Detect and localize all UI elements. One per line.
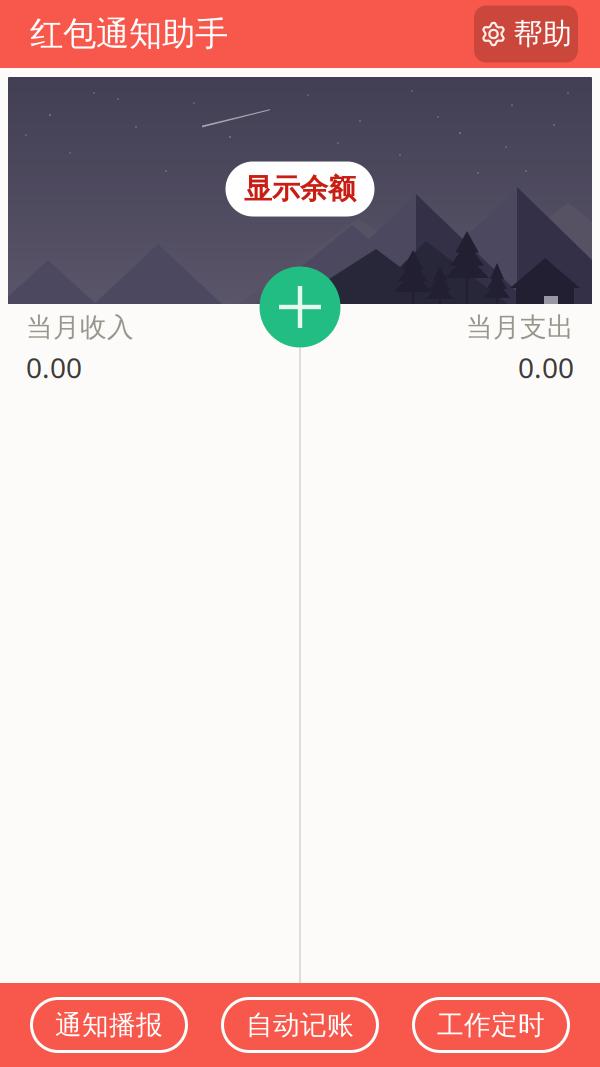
staticText: 自动记账 (246, 1009, 354, 1041)
staticText: 显示余额 (244, 172, 356, 206)
staticText: 通知播报 (55, 1009, 163, 1041)
staticText: 帮助 (513, 16, 571, 52)
staticText: 工作定时 (437, 1009, 545, 1041)
staticText: 当月支出 (466, 311, 574, 344)
button[interactable]: 工作定时 (412, 997, 570, 1053)
button[interactable]: 帮助 (474, 5, 578, 62)
staticText: 0.00 (26, 349, 82, 386)
button[interactable]: 自动记账 (221, 997, 379, 1053)
button[interactable]: 通知播报 (30, 997, 188, 1053)
staticText: 0.00 (518, 349, 574, 386)
button[interactable]: Add record (259, 266, 340, 347)
button[interactable]: 显示余额 (225, 161, 374, 216)
staticText: 当月收入 (26, 311, 134, 344)
staticText: 红包通知助手 (30, 13, 228, 54)
